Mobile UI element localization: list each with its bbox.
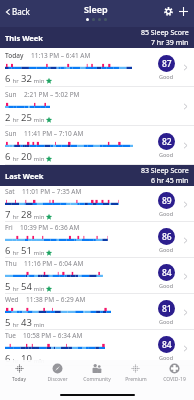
staticText: hr [11,116,21,124]
staticText: 7 hr 39 min [151,38,189,48]
staticText: 83 Sleep Score [141,166,189,176]
button[interactable]: Today [0,48,194,87]
staticText: min [32,357,46,365]
staticText: Good [159,73,174,80]
staticText: 84 [162,339,172,351]
staticText: hr [11,249,21,257]
staticText: 11:38 PM – 6:29 AM [26,295,86,304]
button[interactable]: Premium [116,363,155,383]
button[interactable]: Back [3,4,32,19]
staticText: Sun [5,129,17,138]
staticText: 10 [21,352,32,365]
button[interactable]: Discover [38,363,77,383]
button[interactable]: Thu [0,258,194,294]
staticText: 89 [162,195,172,207]
staticText: 6 hr 45 min [151,176,189,186]
staticText: 25 [21,111,32,124]
staticText: min [32,285,46,293]
staticText: Today [5,51,24,60]
staticText: 5 [5,316,11,329]
staticText: hr [11,77,21,85]
staticText: Good [159,151,174,158]
staticText: hr [11,155,21,163]
staticText: hr [11,357,21,365]
staticText: 28 [21,208,32,221]
staticText: Community [83,376,111,383]
staticText: 6 [5,72,11,85]
button[interactable]: Settings [161,4,176,19]
button[interactable]: Community [77,363,116,383]
staticText: 11:16 PM – 6:04 AM [24,259,84,268]
staticText: 11:01 PM – 7:35 AM [22,187,82,196]
button[interactable]: Tue [0,330,194,366]
button[interactable]: COVID-19 [155,363,194,383]
staticText: 11:41 PM – 7:10 AM [24,129,84,138]
staticText: 6 [5,150,11,163]
staticText: 85 Sleep Score [141,28,189,38]
staticText: Good [159,282,174,289]
staticText: 5 [5,280,11,293]
staticText: 54 [21,280,32,293]
staticText: Sun [5,90,17,99]
staticText: min [32,77,46,85]
button[interactable]: Sun [0,126,194,165]
staticText: 82 [162,136,172,148]
staticText: 87 [162,58,172,70]
button[interactable]: Sat [0,186,194,222]
staticText: 32 [21,72,32,85]
staticText: Sat [5,187,15,196]
staticText: hr [11,321,21,329]
staticText: This Week [5,33,43,43]
staticText: hr [11,285,21,293]
staticText: Wed [5,295,19,304]
staticText: Good [159,210,174,217]
button[interactable]: Sun [0,87,194,126]
button[interactable]: Today [0,363,38,383]
staticText: min [32,155,46,163]
staticText: 20 [21,150,32,163]
staticText: 10:58 PM – 6:34 AM [23,331,83,340]
staticText: 81 [162,303,172,315]
staticText: Sleep [84,3,108,15]
staticText: Fri [5,223,13,232]
staticText: 10:39 PM – 6:36 AM [20,223,80,232]
staticText: 84 [162,267,172,279]
button[interactable]: Fri [0,222,194,258]
staticText: 2:21 PM – 5:02 PM [24,90,80,99]
staticText: 11:13 PM – 6:41 AM [31,51,91,60]
staticText: Discover [47,376,68,383]
staticText: min [32,249,46,257]
staticText: Back [12,6,30,17]
staticText: 6 [5,244,11,257]
staticText: min [32,213,46,221]
staticText: Good [159,354,174,361]
staticText: Good [159,318,174,325]
staticText: Last Week [5,171,44,181]
staticText: 86 [162,231,172,243]
staticText: 6 [5,352,11,365]
button[interactable]: Add [176,4,191,19]
staticText: Tue [5,331,16,340]
staticText: min [32,116,46,124]
staticText: COVID-19 [163,376,186,383]
staticText: Good [159,246,174,253]
staticText: hr [11,213,21,221]
staticText: Today [12,376,26,383]
staticText: 2 [5,111,11,124]
staticText: 51 [21,244,32,257]
staticText: 43 [21,316,32,329]
staticText: Premium [125,376,147,383]
staticText: Thu [5,259,17,268]
button[interactable]: Wed [0,294,194,330]
staticText: min [32,321,46,329]
staticText: 7 [5,208,11,221]
